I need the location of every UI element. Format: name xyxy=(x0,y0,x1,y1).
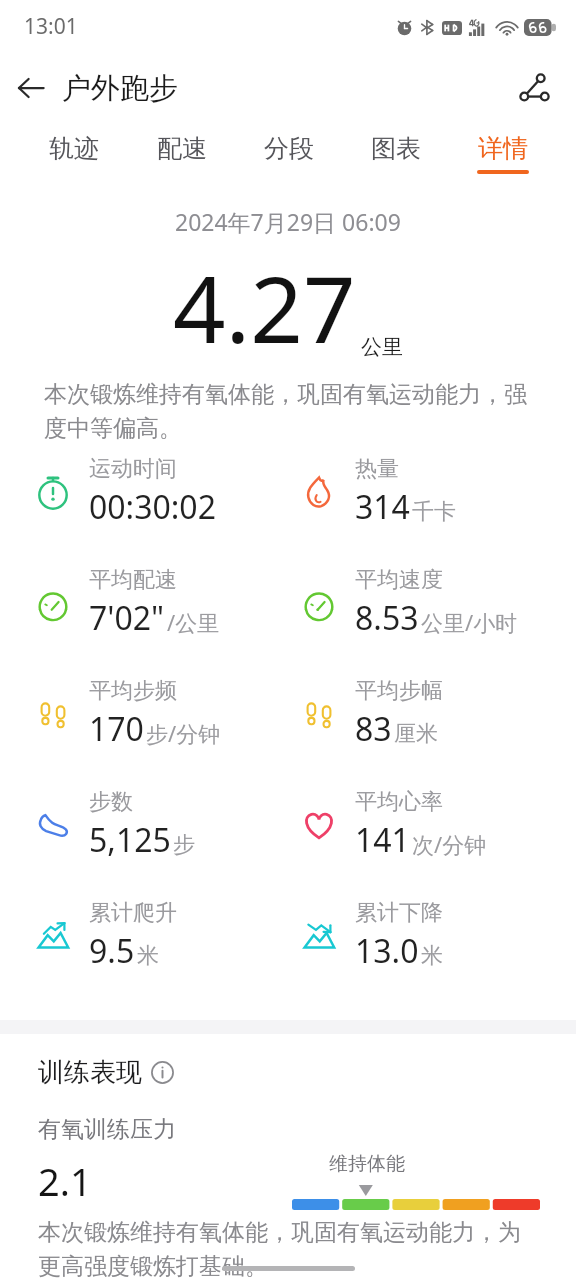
staticText: 141 xyxy=(355,818,410,862)
staticText: 83 xyxy=(355,707,392,751)
staticText: 5,125 xyxy=(89,818,171,862)
staticText: 314 xyxy=(355,485,410,529)
staticText: 平均步频 xyxy=(89,677,177,705)
staticText: 平均步幅 xyxy=(355,677,443,705)
button[interactable]: 训练表现 xyxy=(38,1056,174,1089)
staticText: 平均速度 xyxy=(355,566,443,594)
button[interactable]: 累计爬升 xyxy=(34,899,288,973)
button[interactable]: 累计下降 xyxy=(300,899,576,973)
button[interactable]: 平均步幅 xyxy=(300,677,576,751)
staticText: 2024年7月29日 06:09 xyxy=(175,206,401,237)
staticText: 13.0 xyxy=(355,929,419,973)
staticText: 运动时间 xyxy=(89,455,177,483)
button[interactable]: 配速 xyxy=(128,128,235,179)
staticText: 米 xyxy=(421,942,443,970)
staticText: 配速 xyxy=(157,133,207,164)
button[interactable]: 轨迹 xyxy=(20,128,128,179)
staticText: 步/分钟 xyxy=(146,718,221,748)
button[interactable]: Share xyxy=(506,60,562,116)
button[interactable]: 分段 xyxy=(235,128,342,179)
staticText: 累计下降 xyxy=(355,899,443,927)
staticText: 平均心率 xyxy=(355,788,443,816)
staticText: 厘米 xyxy=(394,720,438,748)
staticText: 本次锻炼维持有氧体能，巩固有氧运动能力，强度中等偏高。 xyxy=(44,380,532,442)
staticText: 详情 xyxy=(478,133,528,164)
staticText: 轨迹 xyxy=(49,133,99,164)
staticText: 本次锻炼维持有氧体能，巩固有氧运动能力，为更高强度锻炼打基础。 xyxy=(38,1218,538,1280)
button[interactable]: 热量 xyxy=(300,455,576,529)
button[interactable]: 平均配速 xyxy=(34,566,288,640)
staticText: 13:01 xyxy=(24,12,78,41)
staticText: 热量 xyxy=(355,455,399,483)
button[interactable]: 平均心率 xyxy=(300,788,576,862)
staticText: 公里 xyxy=(361,334,403,360)
other: Info xyxy=(151,1061,174,1084)
staticText: 分段 xyxy=(264,133,314,164)
button[interactable]: 平均步频 xyxy=(34,677,288,751)
staticText: 米 xyxy=(137,942,159,970)
staticText: 170 xyxy=(89,707,144,751)
staticText: 4.27 xyxy=(173,245,356,370)
staticText: 2.1 xyxy=(38,1155,92,1207)
staticText: 累计爬升 xyxy=(89,899,177,927)
button[interactable]: 运动时间 xyxy=(34,455,288,529)
staticText: 00:30:02 xyxy=(89,485,216,529)
button[interactable]: 图表 xyxy=(342,128,449,179)
button[interactable]: 步数 xyxy=(34,788,288,862)
staticText: 步数 xyxy=(89,788,133,816)
staticText: 平均配速 xyxy=(89,566,177,594)
staticText: 9.5 xyxy=(89,929,135,973)
staticText: 步 xyxy=(173,831,195,859)
staticText: 7'02" xyxy=(89,596,165,640)
staticText: 公里/小时 xyxy=(421,607,518,637)
staticText: 户外跑步 xyxy=(62,70,178,107)
button[interactable]: Back xyxy=(0,57,62,119)
staticText: 维持体能 xyxy=(329,1152,405,1176)
staticText: 次/分钟 xyxy=(412,829,487,859)
staticText: 图表 xyxy=(371,133,421,164)
staticText: 千卡 xyxy=(412,498,456,526)
staticText: 有氧训练压力 xyxy=(38,1115,176,1144)
staticText: 8.53 xyxy=(355,596,419,640)
staticText: /公里 xyxy=(167,607,220,637)
staticText: 训练表现 xyxy=(38,1056,142,1089)
button[interactable]: 平均速度 xyxy=(300,566,576,640)
button[interactable]: 详情 xyxy=(449,128,556,179)
